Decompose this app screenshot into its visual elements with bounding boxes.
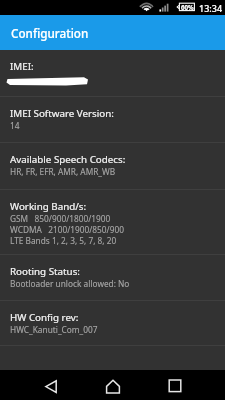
- button[interactable]: IMEI:: [0, 50, 225, 97]
- button[interactable]: Configuration: [0, 15, 225, 50]
- button[interactable]: Home: [88, 370, 138, 400]
- staticText: Working Band/s:: [10, 200, 87, 213]
- staticText: HR, FR, EFR, AMR, AMR_WB: [10, 166, 116, 177]
- staticText: HW Config rev:: [10, 311, 79, 324]
- staticText: WCDMA 2100/1900/850/900: [10, 224, 124, 235]
- staticText: Rooting Status:: [10, 265, 80, 278]
- button[interactable]: Back: [26, 370, 76, 400]
- staticText: IMEI Software Version:: [10, 107, 114, 120]
- staticText: 14: [10, 120, 20, 131]
- staticText: 13:34: [199, 2, 223, 14]
- staticText: LTE Bands 1, 2, 3, 5, 7, 8, 20: [10, 235, 117, 246]
- button[interactable]: IMEI Software Version:: [0, 97, 225, 143]
- button[interactable]: Working Band/s:: [0, 190, 225, 255]
- staticText: GSM 850/900/1800/1900: [10, 213, 111, 224]
- button[interactable]: Available Speech Codecs:: [0, 143, 225, 190]
- button[interactable]: HW Config rev:: [0, 301, 225, 346]
- staticText: 60%: [181, 3, 194, 11]
- staticText: Available Speech Codecs:: [10, 153, 126, 166]
- staticText: Configuration: [11, 25, 89, 41]
- staticText: IMEI:: [10, 60, 34, 73]
- button[interactable]: Rooting Status:: [0, 255, 225, 301]
- staticText: HWC_Kanuti_Com_007: [10, 324, 98, 335]
- staticText: Bootloader unlock allowed: No: [10, 278, 130, 289]
- button[interactable]: Recents: [150, 370, 200, 400]
